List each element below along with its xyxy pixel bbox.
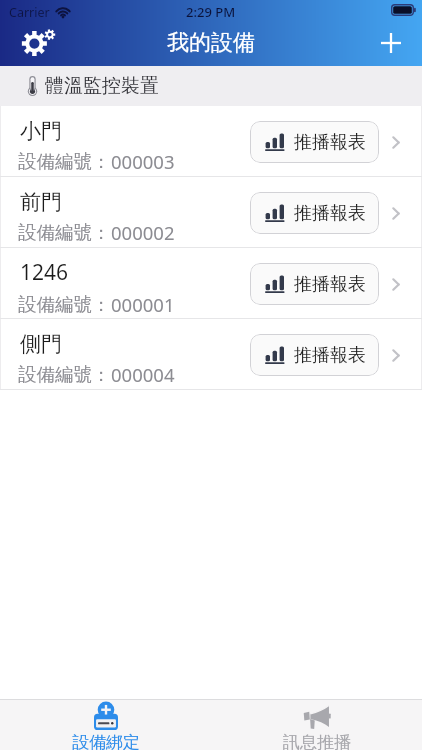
button[interactable]: Settings <box>14 24 58 66</box>
button[interactable]: 設備綁定 <box>0 700 211 750</box>
staticText: 推播報表 <box>294 202 366 225</box>
button[interactable]: 推播報表 <box>250 263 379 305</box>
staticText: 推播報表 <box>294 131 366 154</box>
staticText: 側門 <box>20 331 62 357</box>
staticText: 前門 <box>20 189 62 215</box>
staticText: Carrier <box>9 4 50 21</box>
button[interactable]: 訊息推播 <box>211 700 422 750</box>
staticText: 體溫監控裝置 <box>45 74 159 98</box>
button[interactable]: 小門 <box>0 106 422 177</box>
staticText: 000001 <box>111 292 175 317</box>
button[interactable]: 前門 <box>0 177 422 248</box>
staticText: 設備綁定 <box>72 732 140 750</box>
button[interactable]: Add <box>371 25 411 65</box>
staticText: 000003 <box>111 149 175 174</box>
button[interactable]: 推播報表 <box>250 121 379 163</box>
staticText: 訊息推播 <box>283 732 351 750</box>
staticText: 設備編號： <box>18 293 111 316</box>
button[interactable]: 推播報表 <box>250 192 379 234</box>
staticText: 000004 <box>111 362 175 387</box>
button[interactable]: 1246 <box>0 248 422 319</box>
button[interactable]: 推播報表 <box>250 334 379 376</box>
staticText: 推播報表 <box>294 344 366 367</box>
staticText: 設備編號： <box>18 150 111 173</box>
staticText: 2:29 PM <box>186 3 236 21</box>
staticText: 我的設備 <box>167 29 255 57</box>
staticText: 推播報表 <box>294 273 366 296</box>
staticText: 設備編號： <box>18 221 111 244</box>
staticText: 小門 <box>20 118 62 144</box>
staticText: 1246 <box>20 258 69 287</box>
staticText: 000002 <box>111 220 175 245</box>
staticText: 設備編號： <box>18 363 111 386</box>
button[interactable]: 側門 <box>0 319 422 390</box>
